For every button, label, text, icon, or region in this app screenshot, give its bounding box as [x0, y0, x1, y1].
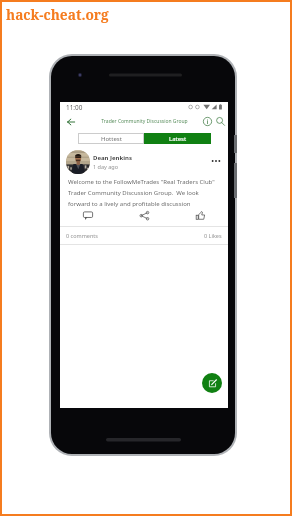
button[interactable]: Share	[116, 208, 172, 223]
staticText: Welcome to the FollowMeTrades "Real Trad…	[68, 178, 220, 208]
staticText: 1 day ago	[93, 163, 119, 170]
button[interactable]: Create post	[202, 373, 222, 393]
staticText: 0 comments	[66, 232, 98, 239]
staticText: Hottest	[101, 135, 122, 143]
button[interactable]: More options	[209, 154, 222, 167]
staticText: hack-cheat.org	[6, 5, 109, 24]
staticText: 0 Likes	[204, 232, 222, 239]
button[interactable]: Comment	[60, 208, 116, 223]
button[interactable]: Information	[201, 115, 214, 128]
button[interactable]: Back	[64, 115, 77, 128]
staticText: 11:00	[66, 103, 83, 112]
staticText: Latest	[169, 135, 187, 143]
button[interactable]: Like	[172, 208, 228, 223]
button[interactable]: Latest	[144, 133, 211, 144]
button[interactable]: Hottest	[78, 133, 144, 144]
staticText: Dean Jenkins	[93, 154, 132, 162]
button[interactable]: Search	[214, 115, 227, 128]
staticText: Trader Community Discussion Group	[101, 118, 188, 125]
